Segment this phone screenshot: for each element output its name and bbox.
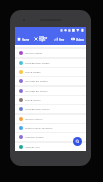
staticText: SHEAR STRESS <box>25 71 41 74</box>
button[interactable]: TENSILE STRAIN <box>15 115 86 123</box>
staticText: Free <box>59 38 65 41</box>
staticText: TENSILE STRAIN <box>25 118 43 121</box>
staticText: THERMAL STRESS <box>25 136 44 139</box>
button[interactable]: Offline Topic <box>32 33 50 45</box>
button[interactable]: THERMAL STRESS <box>15 133 86 141</box>
button[interactable]: COMPRESSION STRAIN <box>15 105 86 113</box>
staticText: Home <box>22 38 30 41</box>
button[interactable]: SHEAR STRAIN <box>15 96 86 104</box>
staticText: Offline Topic <box>39 36 48 42</box>
button[interactable]: Free <box>50 33 68 45</box>
button[interactable]: Videos <box>68 33 86 45</box>
button[interactable]: VOLUMETRIC STRESS <box>15 77 86 85</box>
button[interactable]: COMPRESSION STRESS <box>15 59 86 67</box>
staticText: HOOKES LAW <box>25 146 40 149</box>
button[interactable]: SHEAR STRESS <box>15 68 86 76</box>
staticText: COMPRESSION STRAIN <box>25 108 50 111</box>
staticText: VOLUMETRIC STRESS <box>25 80 48 83</box>
button[interactable]: HOOKES LAW <box>15 143 86 151</box>
staticText: TENSILE STRESS <box>25 52 43 55</box>
staticText: Videos <box>76 38 84 41</box>
button[interactable]: STRESS STRAIN DIAGRAM <box>15 124 86 132</box>
button[interactable]: VOLUMETRIC STRAIN <box>15 87 86 95</box>
staticText: STRESS STRAIN DIAGRAM <box>25 127 53 130</box>
button[interactable]: TENSILE STRESS <box>15 49 86 57</box>
button[interactable]: Search <box>73 137 82 146</box>
staticText: COMPRESSION STRESS <box>25 62 50 65</box>
button[interactable]: Home <box>15 33 32 45</box>
staticText: SHEAR STRAIN <box>25 99 41 102</box>
staticText: VOLUMETRIC STRAIN <box>25 90 48 93</box>
